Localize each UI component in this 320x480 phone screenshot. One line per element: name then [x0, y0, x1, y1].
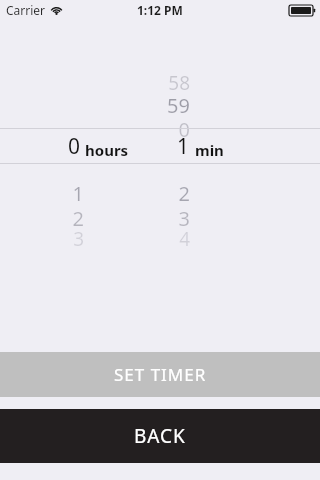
other: Wi-Fi	[50, 5, 63, 15]
button[interactable]: SET TIMER	[0, 352, 320, 397]
button[interactable]: BACK	[0, 409, 320, 463]
staticText: 3	[73, 226, 84, 250]
staticText: 3	[178, 205, 190, 229]
staticText: 2	[72, 205, 84, 229]
button[interactable]: 58	[0, 20, 320, 245]
staticText: 0	[178, 116, 190, 140]
staticText: 2	[178, 180, 190, 204]
staticText: 0	[68, 132, 81, 161]
staticText: 4	[179, 226, 190, 250]
staticText: hours	[85, 140, 129, 160]
staticText: 1:12 PM	[137, 2, 183, 18]
staticText: SET TIMER	[114, 363, 207, 386]
staticText: min	[195, 140, 224, 160]
staticText: 1	[177, 132, 190, 161]
staticText: 1	[72, 180, 84, 204]
staticText: 59	[167, 92, 190, 116]
staticText: 58	[168, 70, 190, 94]
staticText: BACK	[134, 423, 186, 449]
other: Battery full	[289, 5, 315, 16]
staticText: Carrier	[6, 2, 46, 18]
